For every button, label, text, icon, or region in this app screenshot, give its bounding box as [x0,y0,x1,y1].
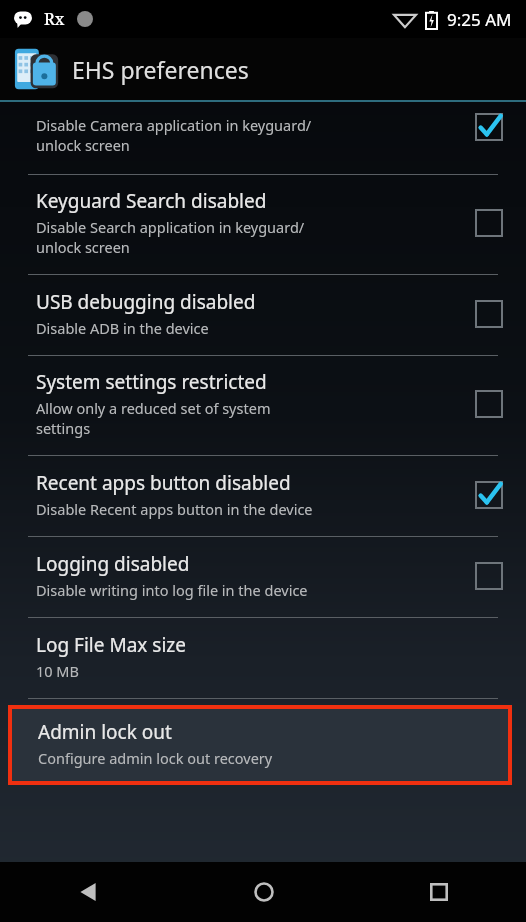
staticText: 9:25 AM [447,8,512,31]
staticText: EHS preferences [72,54,249,85]
staticText: 10 MB [36,661,79,681]
staticText: Keyguard Search disabled [36,188,267,214]
button[interactable]: Admin lock out [8,705,512,785]
staticText: Configure admin lock out recovery [38,748,273,768]
button[interactable]: Back [0,862,176,922]
staticText: System settings restricted [36,369,267,395]
button[interactable]: USB debugging disabled [0,275,526,355]
staticText: Disable ADB in the device [36,318,209,338]
staticText: Log File Max size [36,632,186,658]
staticText: Recent apps button disabled [36,470,291,496]
staticText: Disable Recent apps button in the device [36,499,313,519]
button[interactable]: System settings restricted [0,356,526,455]
button[interactable]: Log File Max size [0,618,526,698]
staticText: Disable Search application in keyguard/ … [36,217,305,258]
staticText: Rx [44,8,65,30]
button[interactable]: Home [176,862,351,922]
staticText: Logging disabled [36,551,190,577]
staticText: Allow only a reduced set of system setti… [36,398,271,439]
staticText: Admin lock out [38,719,172,745]
button[interactable]: Keyguard Search disabled [0,175,526,274]
button[interactable]: Logging disabled [0,537,526,617]
staticText: USB debugging disabled [36,289,256,315]
button[interactable]: Recent apps [351,862,526,922]
staticText: Disable Camera application in keyguard/ … [36,115,312,156]
button[interactable]: Keyguard Camera disabled [0,102,526,174]
staticText: Disable writing into log file in the dev… [36,580,308,600]
button[interactable]: Recent apps button disabled [0,456,526,536]
